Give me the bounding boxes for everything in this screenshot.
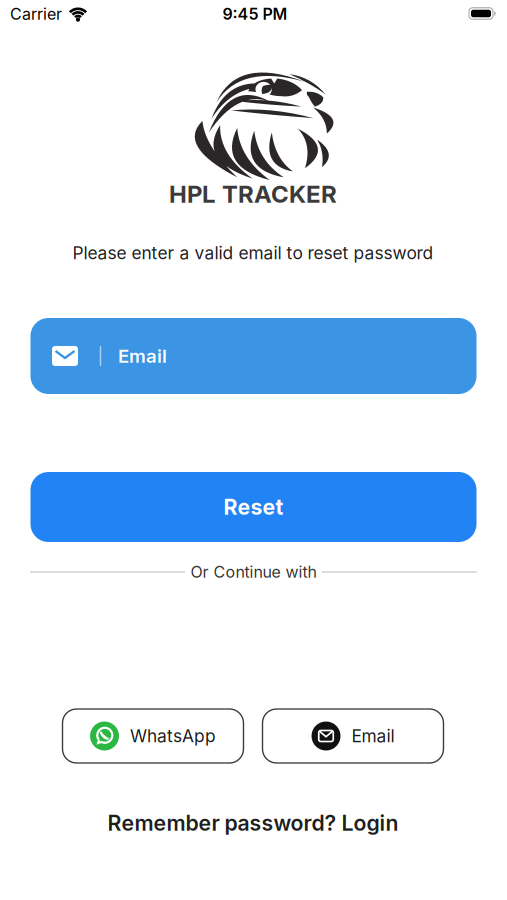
staticText: Email [118,345,167,367]
staticText: 9:45 PM [222,5,287,23]
staticText: Or Continue with [190,563,316,581]
staticText: Email [351,726,394,746]
button[interactable]: Email [262,709,443,763]
button[interactable]: Reset [30,472,476,542]
staticText: Reset [223,494,283,520]
staticText: Remember password? Login [107,810,398,836]
staticText: Please enter a valid email to reset pass… [72,243,433,263]
button[interactable]: Remember password? Login [107,810,398,836]
staticText: WhatsApp [130,726,216,746]
button[interactable]: Email [30,318,476,394]
staticText: HPL TRACKER [169,180,337,208]
button[interactable]: WhatsApp [62,709,243,763]
staticText: Carrier [10,5,62,23]
